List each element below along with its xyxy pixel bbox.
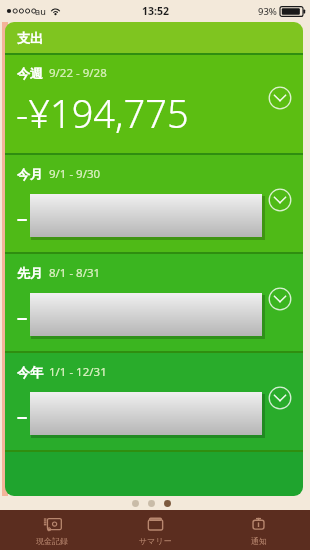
button[interactable]: 今週 xyxy=(5,55,303,153)
button[interactable]: Expand details xyxy=(268,86,292,110)
staticText: 8/1 - 8/31 xyxy=(49,265,101,281)
button[interactable]: サマリー xyxy=(104,510,207,550)
staticText: 現金記録 xyxy=(36,536,68,546)
staticText: 1/1 - 12/31 xyxy=(49,364,107,380)
button[interactable]: Expand details xyxy=(268,287,292,311)
staticText: 先月 xyxy=(17,265,43,281)
button[interactable]: Expand details xyxy=(268,386,292,410)
staticText: 9/1 - 9/30 xyxy=(49,166,101,182)
staticText: - xyxy=(16,288,29,340)
staticText: 今週 xyxy=(17,65,43,81)
staticText: 今月 xyxy=(17,166,43,182)
staticText: 93% xyxy=(258,5,277,18)
staticText: 9/22 - 9/28 xyxy=(49,65,107,81)
staticText: サマリー xyxy=(139,536,172,546)
staticText: au xyxy=(35,5,46,17)
staticText: - xyxy=(16,387,29,439)
staticText: - xyxy=(16,189,29,241)
button[interactable]: 先月 xyxy=(5,254,303,351)
staticText: 通知 xyxy=(251,536,267,546)
button[interactable]: 通知 xyxy=(207,510,310,550)
staticText: 13:52 xyxy=(142,4,169,18)
staticText: -¥194,775 xyxy=(16,87,189,139)
staticText: 今年 xyxy=(17,364,43,380)
button[interactable]: 今年 xyxy=(5,353,303,450)
button[interactable]: Expand details xyxy=(268,188,292,212)
staticText: 支出 xyxy=(17,30,43,46)
button[interactable]: 今月 xyxy=(5,155,303,252)
button[interactable]: 現金記録 xyxy=(0,510,104,550)
button[interactable]: 支出 xyxy=(5,22,303,53)
